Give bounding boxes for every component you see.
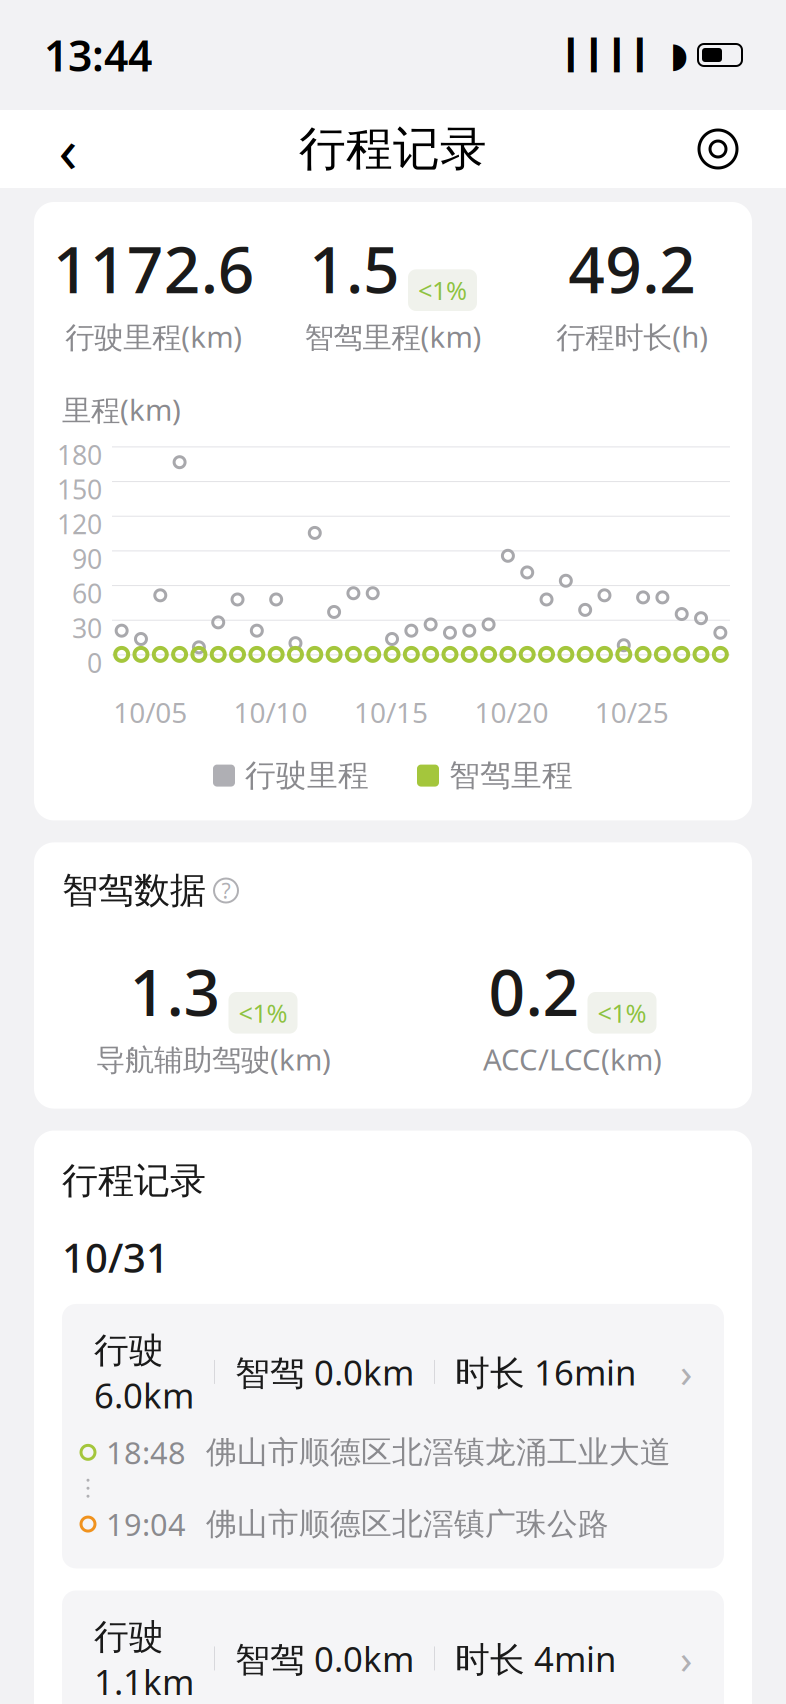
staticText: <1% xyxy=(238,996,287,1030)
staticText: 90 xyxy=(72,541,102,576)
staticText: 智驾 0.0km xyxy=(235,1349,414,1395)
staticText: <1% xyxy=(418,273,467,307)
staticText: 智驾里程 xyxy=(449,757,573,794)
staticText: 1.3 xyxy=(129,949,220,1034)
staticText: › xyxy=(680,1632,692,1685)
staticText: 智驾 0.0km xyxy=(235,1635,414,1681)
staticText: 10/25 xyxy=(595,694,669,731)
staticText: ACC/LCC(km) xyxy=(483,1040,662,1079)
staticText: 1.5 xyxy=(309,226,400,311)
staticText: 150 xyxy=(57,472,102,507)
staticText: 时长 4min xyxy=(455,1635,616,1681)
staticText: 佛山市顺德区北滘镇龙涌工业大道 xyxy=(206,1433,671,1471)
staticText: 13:44 xyxy=(44,27,152,83)
staticText: 行程记录 xyxy=(62,1159,206,1203)
staticText: 1172.6 xyxy=(53,226,255,311)
staticText: ▎▎▎▎ xyxy=(568,38,660,72)
staticText: 10/15 xyxy=(354,694,428,731)
staticText: 30 xyxy=(72,610,102,646)
staticText: 0.2 xyxy=(488,949,579,1034)
staticText: ◗ xyxy=(670,35,688,75)
staticText: 60 xyxy=(72,576,102,611)
staticText: <1% xyxy=(597,996,646,1030)
staticText: 49.2 xyxy=(568,226,696,311)
staticText: 19:04 xyxy=(106,1504,186,1544)
staticText: 智驾里程(km) xyxy=(304,317,481,356)
staticText: 行驶 6.0km xyxy=(94,1326,194,1418)
staticText: 行驶 1.1km xyxy=(94,1612,194,1704)
staticText: 行程时长(h) xyxy=(556,317,708,356)
staticText: 10/05 xyxy=(113,694,187,731)
staticText: 180 xyxy=(57,437,102,472)
staticText: 行程记录 xyxy=(299,120,487,178)
button[interactable]: Settings xyxy=(688,119,748,179)
staticText: 18:48 xyxy=(106,1432,186,1473)
staticText: 佛山市顺德区北滘镇广珠公路 xyxy=(206,1505,609,1543)
button[interactable]: Back xyxy=(38,119,98,179)
staticText: ‹ xyxy=(58,108,77,190)
staticText: 10/20 xyxy=(474,694,548,731)
staticText: 0 xyxy=(87,645,102,680)
button[interactable]: About smart driving data xyxy=(214,876,238,905)
button[interactable]: 行驶 1.1km xyxy=(62,1590,724,1704)
staticText: 120 xyxy=(57,506,102,542)
button[interactable]: 行驶 6.0km xyxy=(62,1304,724,1568)
staticText: › xyxy=(680,1345,692,1398)
staticText: 10/10 xyxy=(234,694,308,731)
staticText: 里程(km) xyxy=(62,390,181,429)
staticText: 导航辅助驾驶(km) xyxy=(96,1040,331,1079)
staticText: 10/31 xyxy=(62,1231,169,1284)
staticText: ? xyxy=(221,876,230,905)
staticText: 行驶里程 xyxy=(245,757,369,794)
staticText: 时长 16min xyxy=(455,1349,636,1395)
staticText: 行驶里程(km) xyxy=(65,317,242,356)
staticText: 智驾数据 xyxy=(62,868,206,913)
